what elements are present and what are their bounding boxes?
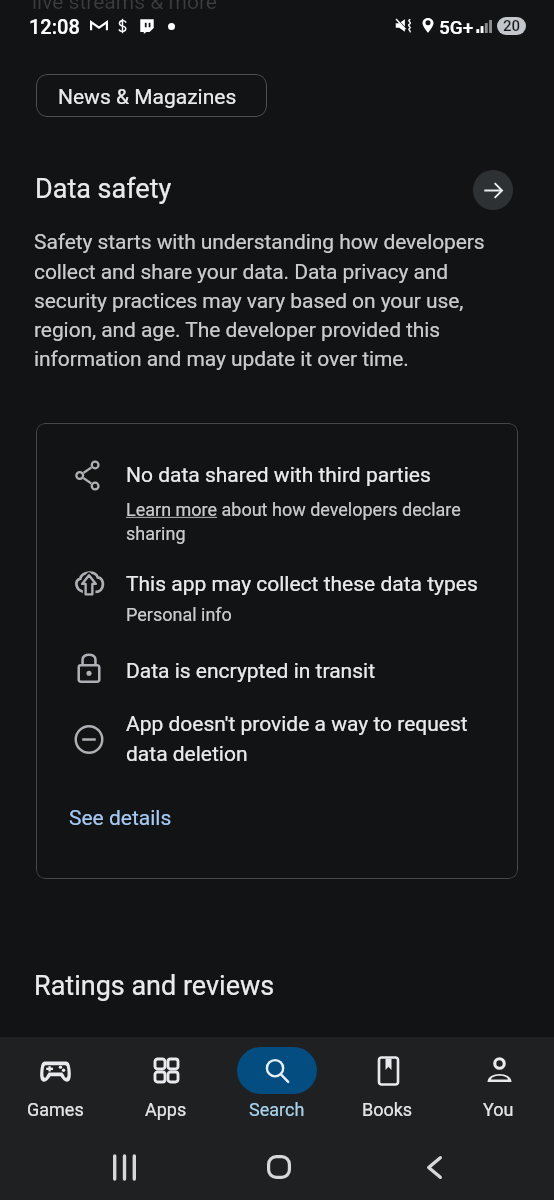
staticText: 12:08 <box>29 15 80 38</box>
staticText: Data is encrypted in transit <box>126 659 375 684</box>
staticText: Safety starts with understanding how dev… <box>34 230 494 371</box>
staticText: Data safety <box>35 173 172 205</box>
button[interactable]: News & Magazines <box>36 74 267 117</box>
staticText: 20 <box>503 17 521 35</box>
button[interactable]: See more data safety details <box>473 170 513 210</box>
button[interactable]: Books <box>332 1037 443 1120</box>
staticText: See details <box>69 806 172 831</box>
button[interactable]: See details <box>59 804 182 833</box>
button[interactable]: Games <box>0 1037 110 1120</box>
staticText: Personal info <box>126 604 232 625</box>
button[interactable]: Recent apps <box>78 1134 170 1200</box>
button[interactable]: You <box>443 1037 554 1120</box>
staticText: News & Magazines <box>58 85 237 110</box>
staticText: Games <box>27 1099 84 1120</box>
staticText: No data shared with third parties <box>126 463 431 488</box>
staticText: Search <box>249 1099 305 1120</box>
staticText: Apps <box>145 1099 187 1120</box>
button[interactable]: Back <box>388 1134 480 1200</box>
staticText: Ratings and reviews <box>34 970 275 1002</box>
button[interactable]: Search <box>221 1037 332 1120</box>
button[interactable]: Apps <box>110 1037 221 1120</box>
staticText: This app may collect these data types <box>126 572 478 597</box>
staticText: Books <box>362 1099 413 1120</box>
staticText: Learn more about how developers declare … <box>126 499 504 544</box>
staticText: 5G+ <box>439 16 474 38</box>
staticText: App doesn't provide a way to request dat… <box>126 712 504 766</box>
staticText: You <box>483 1099 514 1120</box>
button[interactable]: Home <box>233 1134 325 1200</box>
staticText: live streams & more <box>32 0 217 15</box>
